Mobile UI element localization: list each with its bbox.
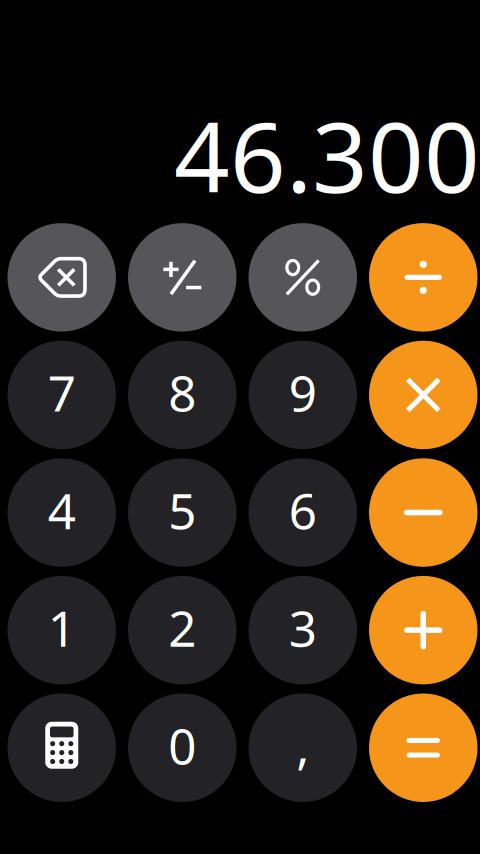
button[interactable]: 0 [128,693,236,802]
button[interactable]: , [248,693,357,802]
button[interactable]: Plus [369,576,477,684]
staticText: 3 [289,595,317,660]
staticText: 5 [168,477,196,543]
staticText: , [296,712,309,778]
button[interactable]: Delete [7,223,116,332]
button[interactable]: Percent [248,223,357,332]
staticText: 0 [168,712,196,778]
button[interactable]: 6 [248,458,357,567]
button[interactable]: Plus minus [128,223,236,332]
button[interactable]: Multiply [369,341,477,449]
staticText: 46.300 [174,90,480,220]
button[interactable]: Equals [369,693,477,802]
staticText: 8 [168,360,196,425]
button[interactable]: 7 [7,341,116,449]
staticText: 9 [289,360,317,425]
staticText: 1 [48,595,76,660]
button[interactable]: 5 [128,458,236,567]
button[interactable]: 4 [7,458,116,567]
staticText: 4 [48,477,76,543]
button[interactable]: 1 [7,576,116,684]
staticText: 6 [289,477,317,543]
button[interactable]: 2 [128,576,236,684]
button[interactable]: Divide [369,223,477,332]
button[interactable]: 3 [248,576,357,684]
button[interactable]: 9 [248,341,357,449]
staticText: 2 [168,595,196,660]
staticText: 7 [48,360,76,425]
button[interactable]: Minus [369,458,477,567]
button[interactable]: 8 [128,341,236,449]
button[interactable]: Calculator [7,693,116,802]
